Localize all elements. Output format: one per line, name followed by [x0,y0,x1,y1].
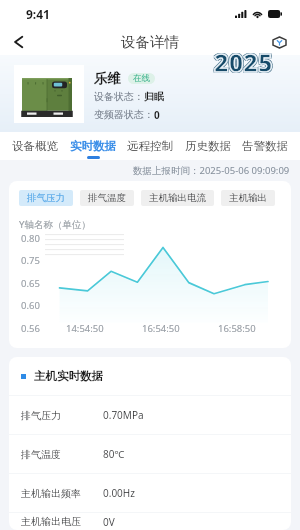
button[interactable]: 设备概览 [12,132,58,160]
staticText: 0.75 [21,254,40,267]
button[interactable]: 历史数据 [185,132,231,160]
staticText: 主机输出 [229,192,267,204]
staticText: 2025 [214,46,273,80]
staticText: 0.80 [21,232,40,245]
staticText: Y轴名称（单位） [19,218,91,231]
staticText: 2025 [214,45,273,79]
staticText: 主机输出电压 [21,515,81,528]
button[interactable]: 主机输出电压 [9,513,291,530]
staticText: 0.56 [21,322,40,335]
button[interactable]: Device settings [272,35,286,49]
staticText: 2025 [215,46,274,80]
staticText: 9:41 [26,6,50,22]
staticText: 设备状态： [94,90,144,102]
staticText: 主机输出电流 [149,192,206,204]
staticText: 乐维 [94,70,121,86]
staticText: 排气温度 [21,448,61,461]
staticText: 2025 [214,45,273,79]
staticText: 远程控制 [127,139,173,153]
staticText: 排气压力 [27,192,65,204]
button[interactable]: 主机输出频率 [9,474,291,512]
staticText: 80℃ [103,447,125,461]
staticText: 设备详情 [121,33,179,51]
staticText: 2025 [213,46,272,80]
button[interactable]: 排气压力 [19,190,73,206]
staticText: 排气压力 [21,409,61,422]
staticText: 0.70MPa [103,408,144,422]
button[interactable]: 远程控制 [127,132,173,160]
staticText: 0.65 [21,277,40,290]
staticText: 主机实时数据 [34,369,103,383]
button[interactable]: Back [6,30,30,54]
button[interactable]: 实时数据 [70,132,116,160]
staticText: 告警数据 [242,139,288,153]
staticText: 主机输出频率 [21,487,81,500]
button[interactable]: 排气压力 [9,396,291,434]
staticText: 2025 [214,44,273,78]
staticText: 2025 [215,44,274,78]
staticText: 16:58:50 [218,322,256,334]
staticText: 实时数据 [70,139,116,153]
staticText: 排气温度 [88,192,126,204]
staticText: 2025 [213,44,272,78]
staticText: 14:54:50 [66,322,104,334]
button[interactable]: 告警数据 [242,132,288,160]
staticText: 0 [154,108,160,120]
button[interactable]: 主机输出电流 [141,190,214,206]
button[interactable]: 主机输出 [221,190,275,206]
staticText: 在线 [133,73,150,84]
staticText: 变频器状态： [94,108,154,120]
button[interactable]: 排气温度 [80,190,134,206]
staticText: 归眠 [144,90,164,102]
staticText: 设备概览 [12,139,58,153]
staticText: 数据上报时间：2025-05-06 09:09:09 [133,164,290,177]
button[interactable]: 排气温度 [9,435,291,473]
staticText: 2025 [213,45,272,79]
staticText: 2025 [215,45,274,79]
staticText: 历史数据 [185,139,231,153]
staticText: 0V [103,515,115,529]
staticText: 0.60 [21,299,40,312]
staticText: 16:54:50 [142,322,180,334]
staticText: 0.00Hz [103,486,135,500]
